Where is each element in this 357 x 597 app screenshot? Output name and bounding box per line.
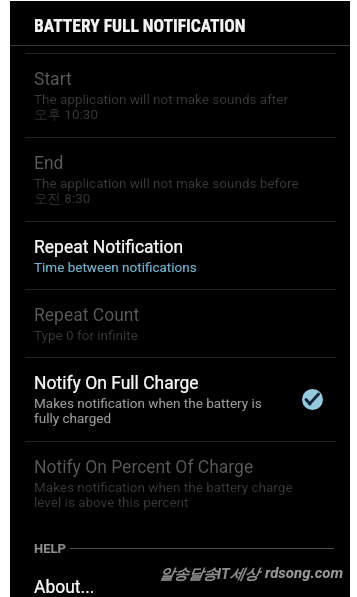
- staticText: The application will not make sounds bef…: [34, 175, 299, 191]
- button[interactable]: [10, 358, 350, 441]
- staticText: Repeat Count: [34, 305, 140, 326]
- staticText: 알송달송IT세상: [159, 565, 259, 583]
- staticText: About...: [34, 577, 95, 597]
- staticText: Repeat Notification: [34, 237, 184, 258]
- button[interactable]: [10, 290, 350, 357]
- staticText: Makes notification when the battery is: [34, 395, 262, 411]
- button[interactable]: [10, 442, 350, 525]
- staticText: Notify On Full Charge: [34, 373, 199, 394]
- staticText: Type 0 for infinite: [34, 327, 138, 343]
- staticText: End: [34, 153, 64, 174]
- staticText: 오전 8:30: [34, 190, 91, 207]
- staticText: 오후 10:30: [34, 106, 98, 123]
- staticText: level is above this percent: [34, 494, 189, 510]
- staticText: HELP: [34, 541, 66, 556]
- staticText: Start: [34, 69, 72, 90]
- staticText: BATTERY FULL NOTIFICATION: [34, 16, 246, 37]
- button[interactable]: [10, 222, 350, 289]
- button[interactable]: [10, 138, 350, 221]
- button[interactable]: [10, 556, 350, 597]
- staticText: The application will not make sounds aft…: [34, 91, 289, 107]
- staticText: fully charged: [34, 410, 112, 426]
- staticText: rdsong.com: [265, 564, 344, 582]
- button[interactable]: [10, 54, 350, 137]
- button[interactable]: Notify on full charge enabled: [302, 389, 323, 410]
- button[interactable]: Battery full notification settings: [10, 1, 350, 45]
- staticText: Time between notifications: [34, 259, 197, 275]
- staticText: Makes notification when the battery char…: [34, 479, 293, 495]
- staticText: Notify On Percent Of Charge: [34, 457, 254, 478]
